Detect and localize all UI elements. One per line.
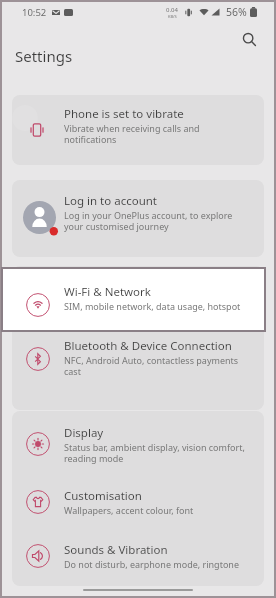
staticText: Status bar, ambient display, vision comf… xyxy=(64,441,251,464)
staticText: KB/S xyxy=(168,14,177,19)
staticText: Customisation xyxy=(64,488,142,504)
staticText: Bluetooth & Device Connection xyxy=(64,338,232,354)
staticText: 10:52 xyxy=(22,6,47,19)
staticText: Wallpapers, accent colour, font xyxy=(64,504,194,516)
staticText: NFC, Android Auto, contactless payments … xyxy=(64,354,251,377)
staticText: Settings xyxy=(15,46,73,66)
staticText: Log in to account xyxy=(64,193,158,209)
button[interactable]: Display xyxy=(12,411,264,474)
staticText: 0.04 xyxy=(166,6,178,14)
button[interactable]: Wi-Fi & Network xyxy=(3,269,264,330)
staticText: Vibrate when receiving calls and notific… xyxy=(64,122,251,145)
staticText: Display xyxy=(64,425,104,441)
button[interactable]: Customisation xyxy=(12,474,264,528)
staticText: Do not disturb, earphone mode, ringtone xyxy=(64,558,239,570)
staticText: Wi-Fi & Network xyxy=(64,284,151,300)
staticText: Sounds & Vibration xyxy=(64,542,168,558)
staticText: SIM, mobile network, data usage, hotspot xyxy=(64,300,241,312)
staticText: Phone is set to vibrate xyxy=(64,106,184,122)
button[interactable]: Log in to account xyxy=(12,180,264,257)
staticText: Log in your OnePlus account, to explore … xyxy=(64,209,251,232)
button[interactable]: Bluetooth & Device Connection xyxy=(12,331,264,410)
button[interactable]: Search xyxy=(236,26,262,52)
button[interactable]: Sounds & Vibration xyxy=(12,528,264,582)
staticText: 56% xyxy=(226,5,247,19)
button[interactable]: Phone is set to vibrate xyxy=(12,95,264,165)
